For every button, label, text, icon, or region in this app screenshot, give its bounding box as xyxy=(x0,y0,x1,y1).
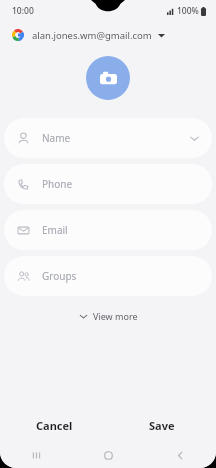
staticText: alan.jones.wm@gmail.com xyxy=(32,29,152,42)
staticText: View more xyxy=(93,310,138,322)
staticText: Save xyxy=(149,418,175,433)
button[interactable]: Phone xyxy=(4,164,212,204)
button[interactable]: Email xyxy=(4,210,212,250)
button[interactable]: Name xyxy=(4,118,212,158)
button[interactable]: alan.jones.wm@gmail.com xyxy=(0,22,216,48)
button[interactable]: Add contact photo xyxy=(86,56,130,100)
button[interactable]: Home xyxy=(72,442,144,468)
staticText: Groups xyxy=(42,269,77,283)
button[interactable]: Groups xyxy=(4,256,212,296)
button[interactable]: Back xyxy=(144,442,216,468)
button[interactable]: Save xyxy=(108,408,216,442)
staticText: Phone xyxy=(42,177,73,191)
staticText: Email xyxy=(42,223,68,237)
staticText: Name xyxy=(42,131,71,145)
staticText: 10:00 xyxy=(12,5,34,17)
button[interactable]: Recents xyxy=(0,442,72,468)
staticText: Cancel xyxy=(36,418,73,433)
button[interactable]: View more xyxy=(69,306,148,326)
button[interactable]: Cancel xyxy=(0,408,108,442)
staticText: 100% xyxy=(177,5,199,17)
